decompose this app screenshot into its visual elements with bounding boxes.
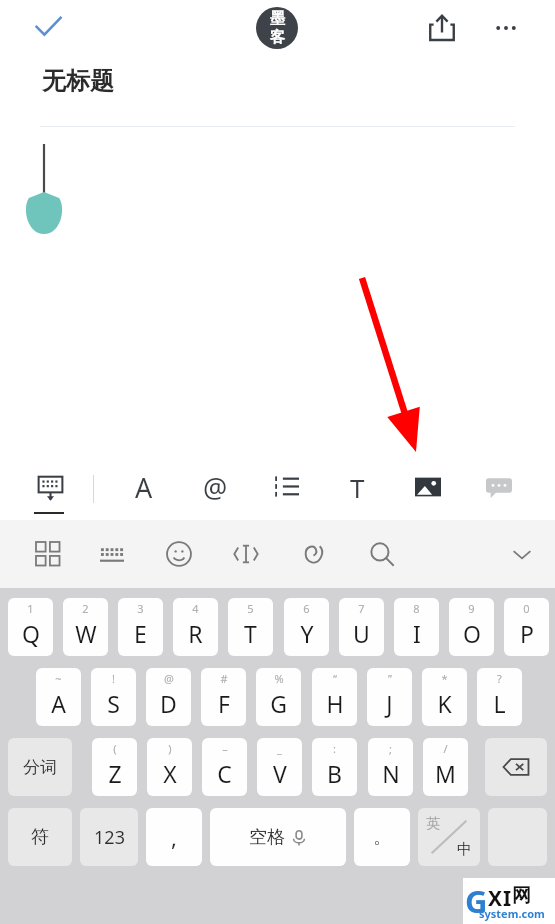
button[interactable]: Backspace [483, 736, 549, 798]
staticText: 1 [27, 601, 34, 616]
button[interactable]: ; [366, 736, 415, 798]
button[interactable]: Hide keyboard [26, 460, 74, 514]
staticText: / [443, 741, 448, 756]
button[interactable]: Collapse [498, 530, 546, 578]
staticText: J [386, 688, 393, 719]
staticText: ) [168, 741, 172, 756]
button[interactable]: ( [90, 736, 139, 798]
button[interactable]: ” [365, 666, 414, 728]
staticText: 。 [373, 826, 391, 849]
button[interactable]: “ [310, 666, 359, 728]
staticText: 0 [523, 601, 530, 616]
button[interactable]: _ [255, 736, 304, 798]
button[interactable]: Edit text [222, 530, 270, 578]
button[interactable]: 0 [502, 596, 551, 658]
staticText: O [463, 618, 481, 649]
staticText: 空格 [249, 826, 285, 849]
button[interactable]: Comment [481, 460, 517, 514]
button[interactable]: : [310, 736, 359, 798]
button[interactable]: 分词 [6, 736, 74, 798]
button[interactable]: 。 [352, 806, 412, 868]
button[interactable]: 8 [392, 596, 441, 658]
staticText: 9 [468, 601, 475, 616]
staticText: @ [203, 469, 228, 506]
button[interactable]: % [254, 666, 303, 728]
staticText: H [326, 688, 344, 719]
button[interactable]: 9 [447, 596, 496, 658]
button[interactable]: ? [475, 666, 524, 728]
staticText: 英 [426, 815, 440, 833]
button[interactable]: Insert image [410, 460, 446, 514]
button[interactable]: # [199, 666, 248, 728]
button[interactable]: 6 [282, 596, 331, 658]
staticText: , [171, 822, 177, 852]
staticText: Z [108, 758, 122, 789]
staticText: “ [333, 671, 337, 686]
button[interactable]: , [144, 806, 204, 868]
staticText: system.com [479, 906, 545, 921]
button[interactable]: ~ [34, 666, 83, 728]
staticText: 2 [82, 601, 89, 616]
staticText: U [353, 618, 370, 649]
button[interactable]: Emoji [155, 530, 203, 578]
staticText: # [220, 671, 228, 686]
staticText: S [107, 688, 120, 719]
staticText: : [333, 741, 336, 756]
button[interactable]: 符 [6, 806, 74, 868]
button[interactable]: 123 [78, 806, 140, 868]
staticText: C [217, 758, 232, 789]
staticText: 3 [137, 601, 144, 616]
staticText: W [75, 618, 97, 649]
staticText: 8 [413, 601, 420, 616]
button[interactable]: Search [358, 530, 406, 578]
button[interactable]: 4 [171, 596, 220, 658]
staticText: ( [113, 741, 117, 756]
staticText: G [465, 880, 488, 922]
button[interactable]: ) [145, 736, 194, 798]
staticText: A [51, 688, 66, 719]
button[interactable]: Mention [197, 460, 233, 514]
button[interactable]: Share [412, 0, 472, 56]
staticText: _ [277, 741, 282, 756]
staticText: 墨 [270, 9, 285, 28]
button[interactable]: @ [144, 666, 193, 728]
staticText: P [520, 618, 534, 649]
button[interactable]: 1 [6, 596, 55, 658]
button[interactable]: 7 [337, 596, 386, 658]
staticText: 分词 [23, 757, 57, 778]
staticText: K [437, 688, 452, 719]
button[interactable]: * [420, 666, 469, 728]
staticText: E [134, 618, 147, 649]
button[interactable]: 2 [61, 596, 110, 658]
button[interactable]: 3 [116, 596, 165, 658]
button[interactable]: Done [18, 0, 78, 56]
button[interactable]: Panels [24, 530, 72, 578]
staticText: F [218, 688, 230, 719]
button[interactable]: Font style [126, 460, 162, 514]
button[interactable]: Enter [486, 806, 549, 868]
staticText: 4 [192, 601, 199, 616]
button[interactable]: Logo [254, 5, 300, 51]
button[interactable]: Keyboard layout [88, 530, 136, 578]
button[interactable]: Switch language [416, 806, 482, 868]
button[interactable]: More options [478, 0, 534, 56]
button[interactable]: Clipboard [290, 530, 338, 578]
staticText: 无标题 [42, 66, 114, 96]
staticText: G [270, 688, 287, 719]
staticText: R [188, 618, 203, 649]
button[interactable]: 5 [226, 596, 275, 658]
button[interactable]: Text format [339, 460, 375, 514]
button[interactable]: ! [89, 666, 138, 728]
staticText: * [441, 671, 448, 686]
staticText: X [163, 758, 177, 789]
staticText: 123 [94, 825, 125, 850]
button[interactable]: / [421, 736, 470, 798]
button[interactable]: Space [208, 806, 348, 868]
staticText: ; [389, 741, 392, 756]
button[interactable]: – [200, 736, 249, 798]
staticText: % [274, 671, 284, 686]
staticText: Y [300, 618, 314, 649]
staticText: ? [497, 671, 502, 686]
staticText: 网 [512, 884, 531, 908]
button[interactable]: Ordered list [268, 460, 304, 514]
